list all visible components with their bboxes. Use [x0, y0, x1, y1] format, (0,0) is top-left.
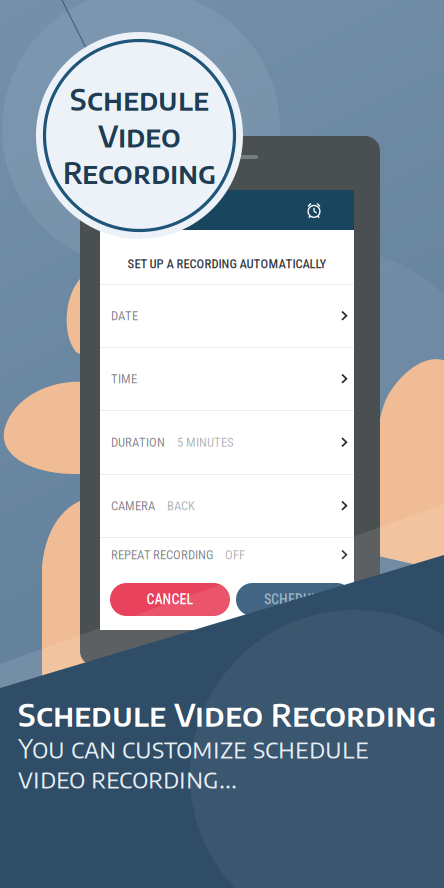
staticText: SCHEDULE: [264, 591, 325, 608]
button[interactable]: SCHEDULE: [236, 583, 353, 616]
staticText: TIME: [111, 372, 137, 386]
button[interactable]: REPEAT RECORDING: [100, 538, 354, 572]
staticText: Video: [98, 117, 181, 154]
staticText: Schedule: [70, 80, 209, 117]
staticText: video recording...: [18, 762, 237, 794]
staticText: Recording: [63, 154, 216, 190]
staticText: 5 MINUTES: [165, 435, 234, 450]
staticText: CANCEL: [146, 591, 193, 608]
staticText: SET UP A RECORDING AUTOMATICALLY: [127, 257, 326, 271]
staticText: BACK: [155, 499, 195, 513]
button[interactable]: DURATION: [100, 411, 354, 474]
button[interactable]: Alarm: [305, 201, 323, 219]
staticText: OFF: [213, 548, 245, 562]
button[interactable]: DATE: [100, 285, 354, 347]
staticText: DURATION: [111, 435, 165, 450]
staticText: Schedule Video Recording: [18, 694, 436, 734]
staticText: CAMERA: [111, 499, 155, 513]
button[interactable]: TIME: [100, 348, 354, 410]
button[interactable]: CANCEL: [110, 583, 230, 616]
staticText: REPEAT RECORDING: [111, 548, 213, 562]
staticText: You can customize schedule: [18, 732, 369, 764]
staticText: DATE: [111, 309, 138, 323]
button[interactable]: CAMERA: [100, 475, 354, 537]
